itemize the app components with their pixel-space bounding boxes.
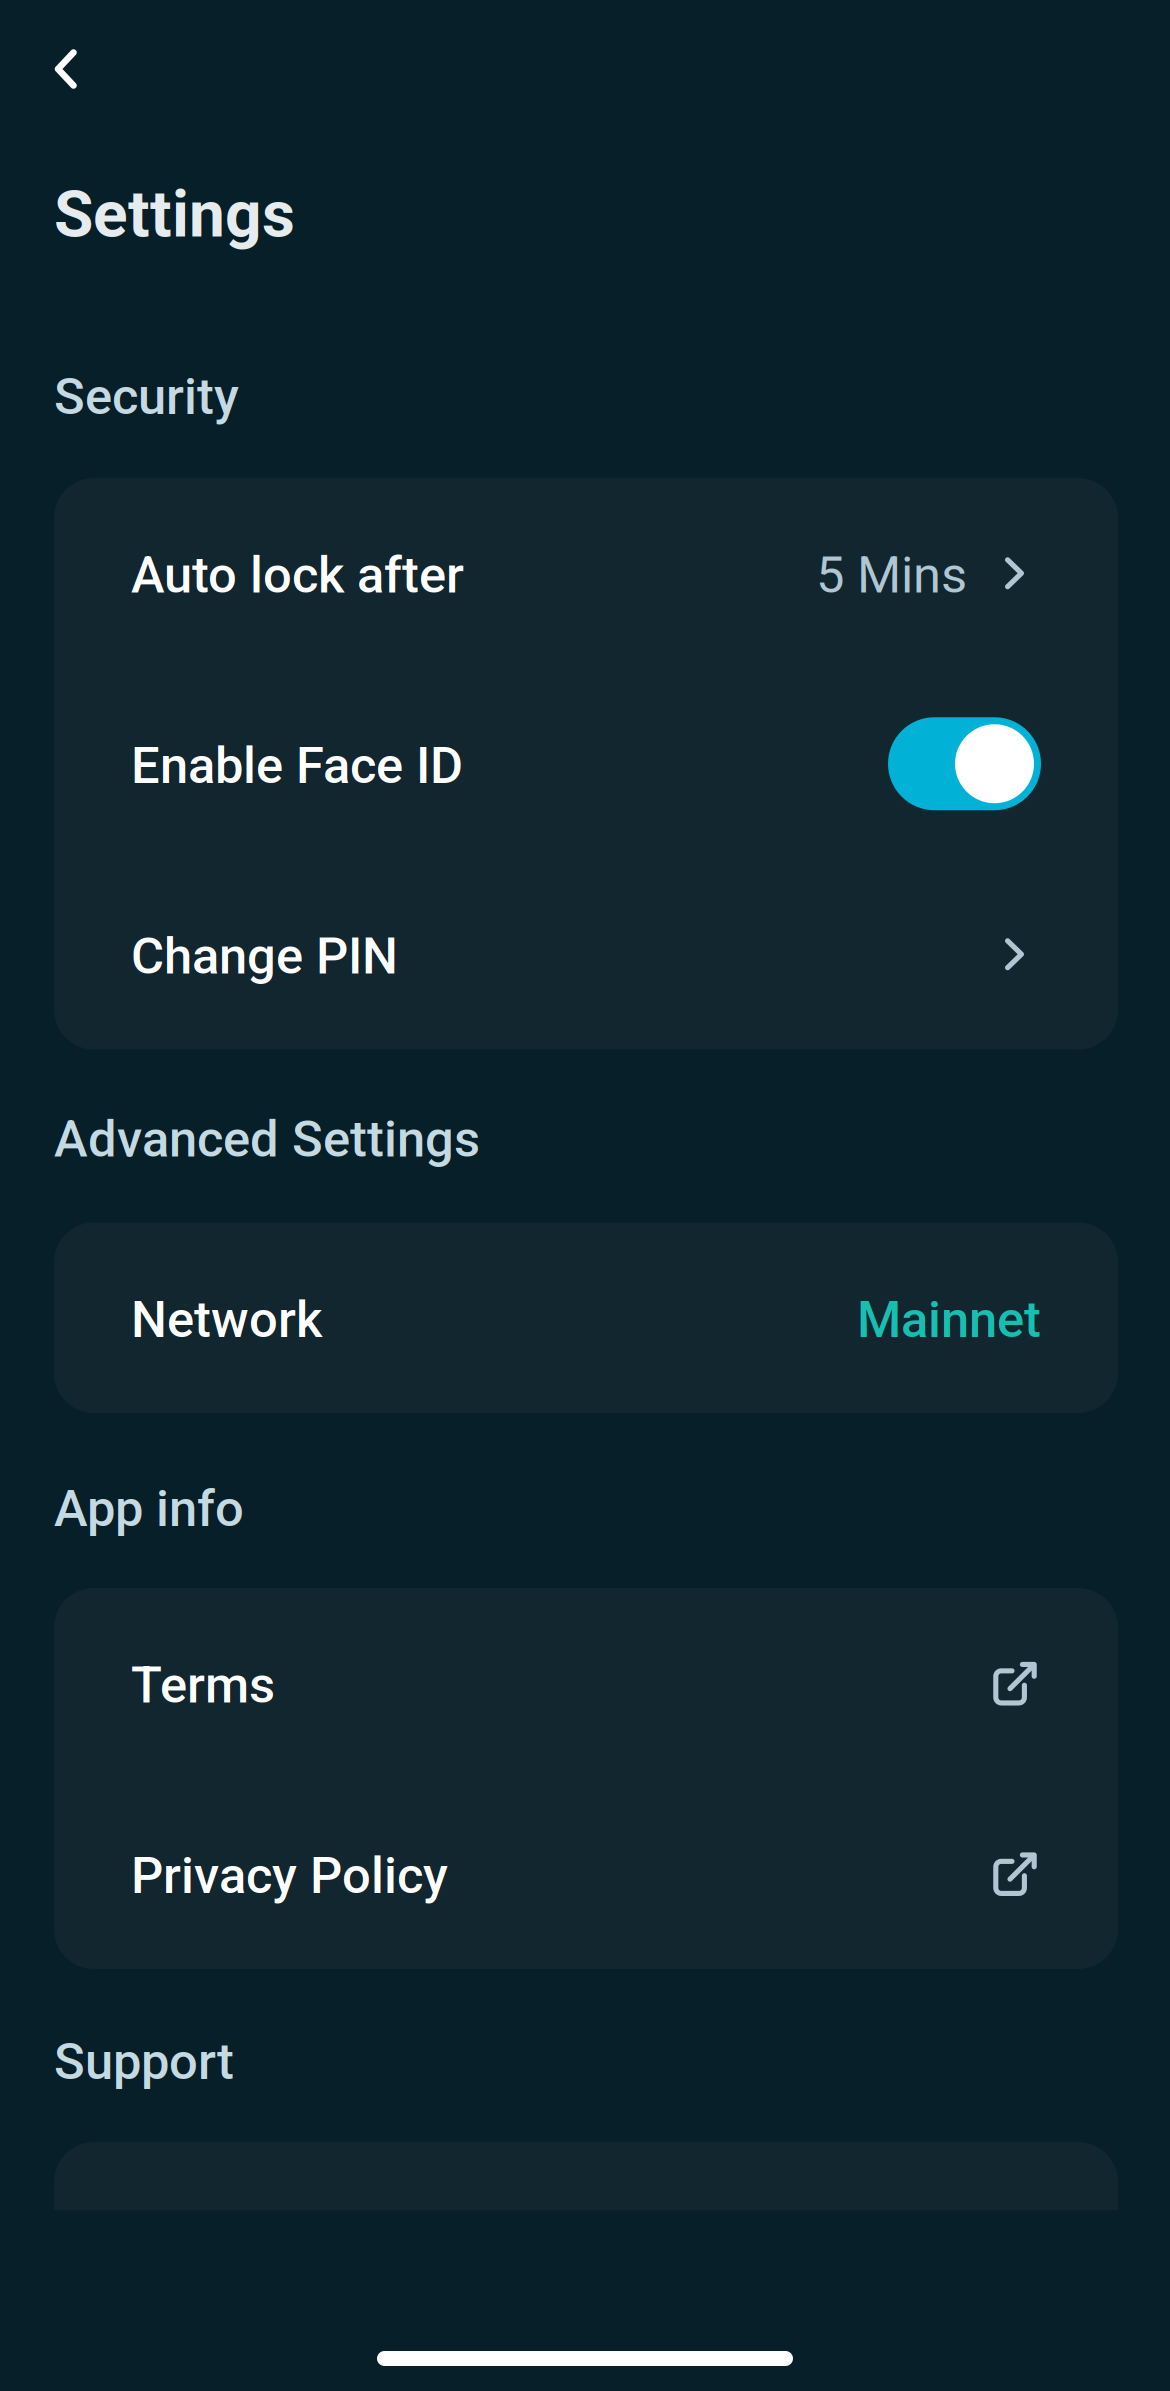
staticText: Enable Face ID: [131, 736, 463, 795]
button[interactable]: Auto lock after: [54, 478, 1118, 668]
staticText: Network: [131, 1290, 322, 1349]
staticText: Terms: [131, 1656, 275, 1715]
staticText: Security: [54, 367, 239, 426]
staticText: Advanced Settings: [54, 1109, 480, 1169]
staticText: App info: [54, 1479, 244, 1538]
staticText: 5 Mins: [816, 546, 967, 605]
staticText: Settings: [54, 177, 295, 252]
staticText: Support: [54, 2032, 234, 2091]
button[interactable]: Terms: [54, 1588, 1118, 1778]
button[interactable]: Help Center: [54, 2142, 1118, 2332]
button[interactable]: Network: [54, 1222, 1118, 1413]
staticText: Privacy Policy: [131, 1846, 448, 1905]
button[interactable]: Back: [18, 21, 114, 117]
button[interactable]: Enable Face ID: [54, 668, 1118, 859]
staticText: Change PIN: [131, 927, 398, 986]
button[interactable]: Change PIN: [54, 859, 1118, 1049]
staticText: Mainnet: [857, 1290, 1041, 1349]
button[interactable]: Privacy Policy: [54, 1778, 1118, 1969]
staticText: Auto lock after: [131, 546, 464, 605]
